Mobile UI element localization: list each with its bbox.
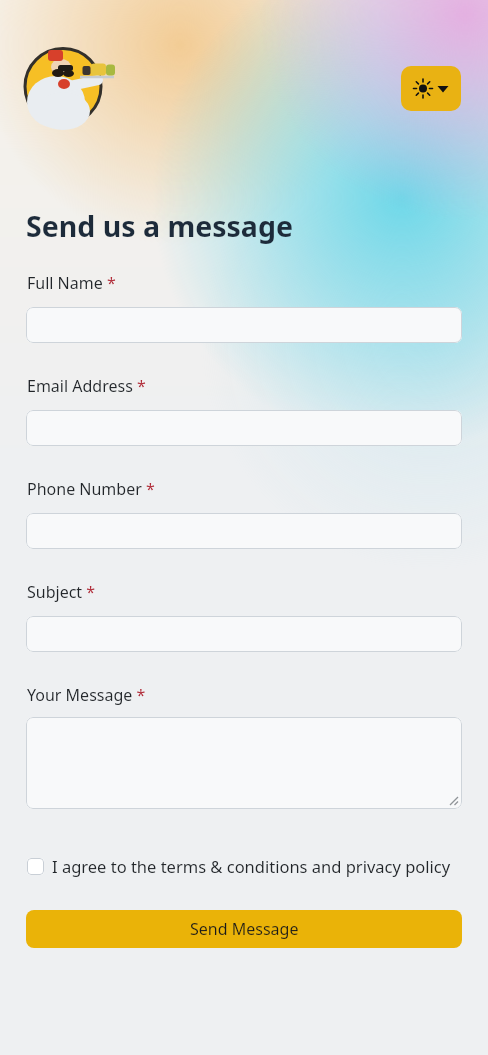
button[interactable]: Send Message xyxy=(26,910,462,948)
staticText: Full Name * xyxy=(27,272,116,294)
staticText: I agree to the terms & conditions and pr… xyxy=(52,855,451,877)
button[interactable] xyxy=(26,307,462,343)
button[interactable] xyxy=(401,66,461,111)
staticText: Email Address * xyxy=(27,375,146,397)
button[interactable] xyxy=(26,616,462,652)
staticText: Send us a message xyxy=(26,207,293,246)
button[interactable] xyxy=(26,513,462,549)
staticText: Subject * xyxy=(27,581,96,603)
staticText: Your Message * xyxy=(27,684,146,706)
button[interactable] xyxy=(24,46,118,130)
button[interactable] xyxy=(26,717,462,809)
staticText: Send Message xyxy=(190,918,299,940)
button[interactable] xyxy=(26,410,462,446)
staticText: Phone Number * xyxy=(27,478,155,500)
button[interactable]: I agree to the terms & conditions and pr… xyxy=(27,855,451,877)
